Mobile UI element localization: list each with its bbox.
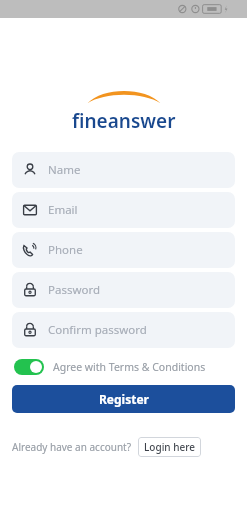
staticText: Already have an account?	[12, 440, 132, 454]
staticText: fineanswer	[72, 108, 176, 134]
staticText: Email	[48, 202, 78, 218]
button[interactable]: Name	[12, 152, 235, 188]
button[interactable]: Register	[12, 385, 235, 413]
button[interactable]: Confirm password	[12, 312, 235, 348]
staticText: Login here	[144, 440, 195, 454]
staticText: Confirm password	[48, 322, 147, 338]
staticText: Password	[48, 282, 101, 298]
staticText: Phone	[48, 242, 83, 258]
button[interactable]: Password	[12, 272, 235, 308]
button[interactable]: Phone	[12, 232, 235, 268]
staticText: Agree with Terms & Conditions	[53, 360, 206, 374]
button[interactable]: Login here	[138, 437, 201, 457]
button[interactable]: Agree with Terms & Conditions	[14, 359, 233, 375]
button[interactable]: Email	[12, 192, 235, 228]
staticText: Name	[48, 162, 81, 178]
staticText: Register	[99, 391, 149, 407]
